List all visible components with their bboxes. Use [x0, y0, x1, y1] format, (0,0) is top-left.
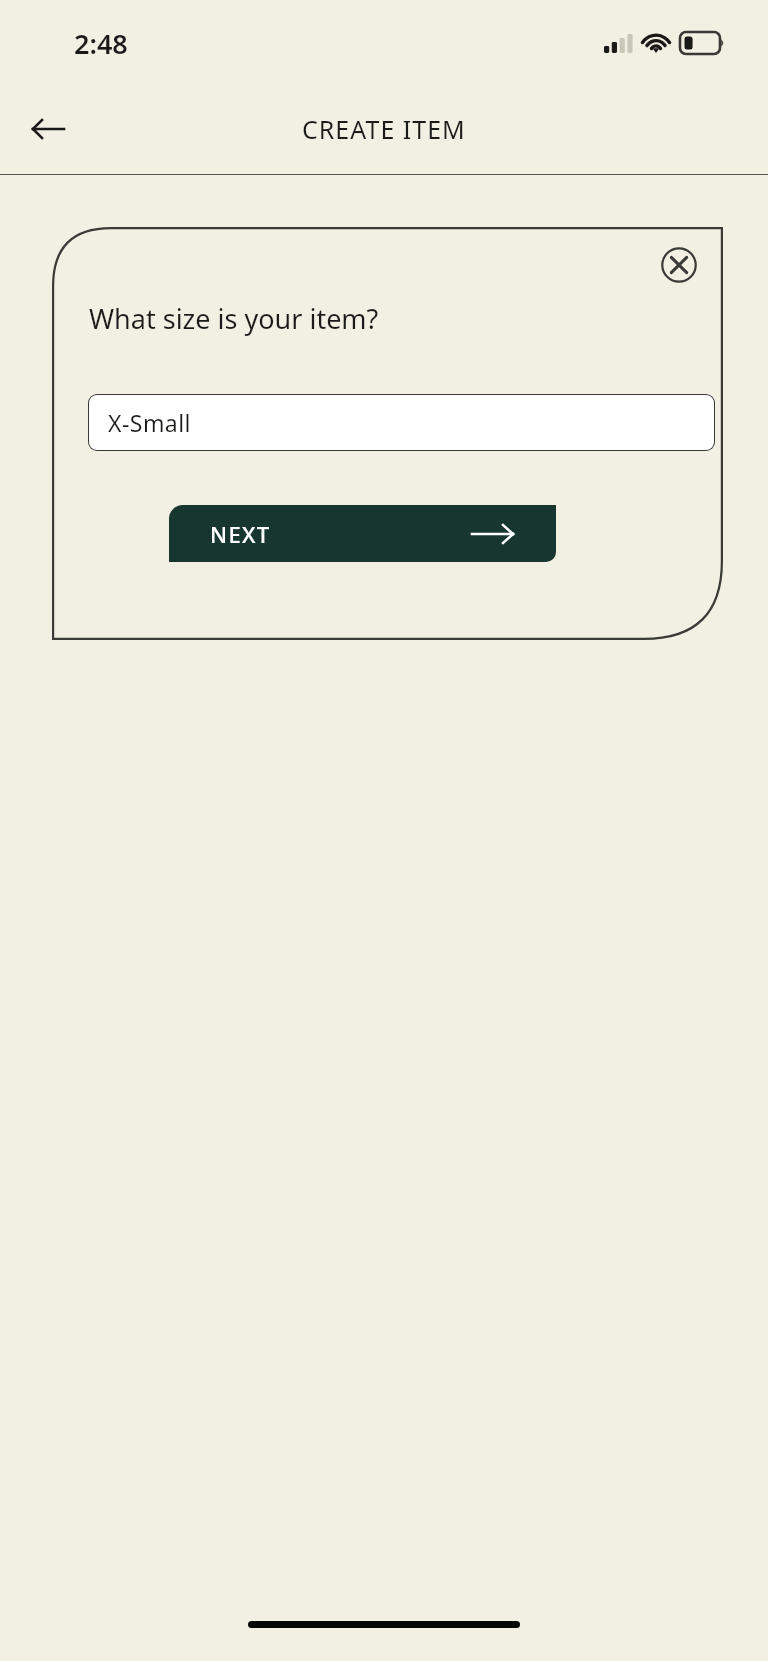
- staticText: CREATE ITEM: [302, 112, 466, 146]
- button[interactable]: Close: [655, 241, 703, 289]
- staticText: 2:48: [74, 25, 128, 62]
- button[interactable]: NEXT: [169, 505, 556, 562]
- button[interactable]: Back: [16, 97, 80, 161]
- button[interactable]: X-Small: [88, 394, 715, 451]
- staticText: NEXT: [210, 519, 271, 549]
- staticText: What size is your item?: [89, 300, 379, 337]
- staticText: X-Small: [108, 407, 192, 438]
